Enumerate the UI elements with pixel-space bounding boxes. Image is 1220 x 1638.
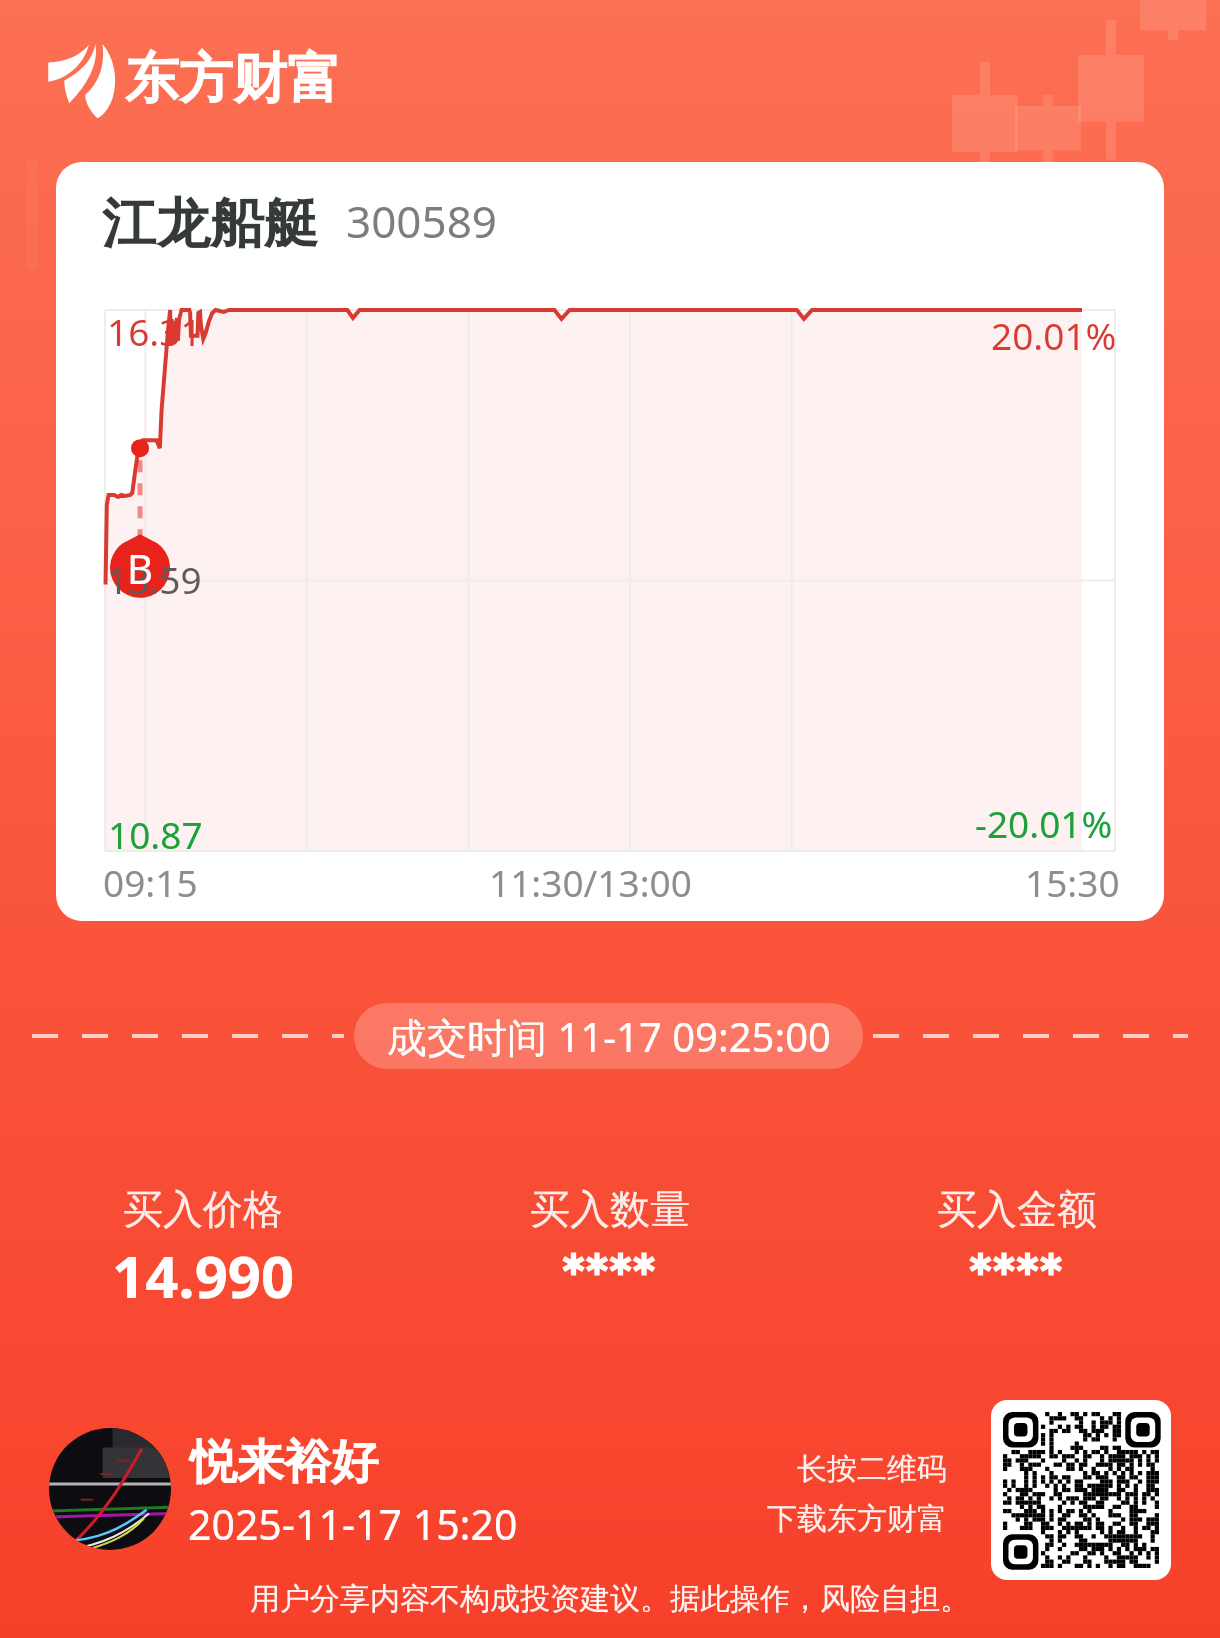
staticText: 买入金额 [937,1184,1097,1234]
staticText: 15:30 [1025,857,1120,907]
other: 东方财富 [47,36,131,120]
staticText: 成交时间 11-17 09:25:00 [387,1009,831,1064]
staticText: 买入数量 [530,1184,690,1234]
staticText: -20.01% [975,798,1113,848]
staticText: 长按二维码 [797,1450,947,1488]
staticText: 2025-11-17 15:20 [188,1496,518,1552]
staticText: B [127,541,153,595]
staticText: 300589 [346,191,498,251]
button[interactable]: 二维码 [991,1400,1171,1580]
staticText: 东方财富 [125,45,341,113]
staticText: 14.990 [112,1236,295,1315]
button[interactable]: 用户头像 [49,1428,171,1550]
button[interactable]: 江龙船艇 [56,162,1164,921]
staticText: 下载东方财富 [767,1500,947,1538]
button[interactable]: 买入金额 [813,1184,1220,1300]
button[interactable]: 买入数量 [406,1184,813,1300]
staticText: 11:30/13:00 [489,857,692,907]
staticText: 用户分享内容不构成投资建议。据此操作，风险自担。 [0,1580,1220,1618]
staticText: 16.31 [107,306,202,356]
button[interactable]: 买入价格 [0,1184,406,1315]
staticText: 买入价格 [123,1184,283,1234]
staticText: 09:15 [103,857,198,907]
staticText: 江龙船艇 [102,190,318,258]
staticText: 悦来裕好 [190,1433,378,1492]
staticText: 20.01% [991,310,1117,360]
staticText: 13.59 [107,554,202,604]
staticText: 10.87 [108,809,203,859]
button[interactable]: 成交时间 11-17 09:25:00 [354,1003,863,1069]
